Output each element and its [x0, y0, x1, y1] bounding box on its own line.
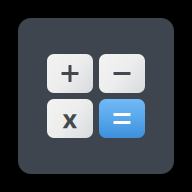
- button[interactable]: Equals: [99, 99, 145, 138]
- staticText: x: [62, 102, 77, 135]
- button[interactable]: Subtract: [99, 54, 145, 93]
- button[interactable]: Multiply: [47, 99, 93, 138]
- button[interactable]: Add: [47, 54, 93, 93]
